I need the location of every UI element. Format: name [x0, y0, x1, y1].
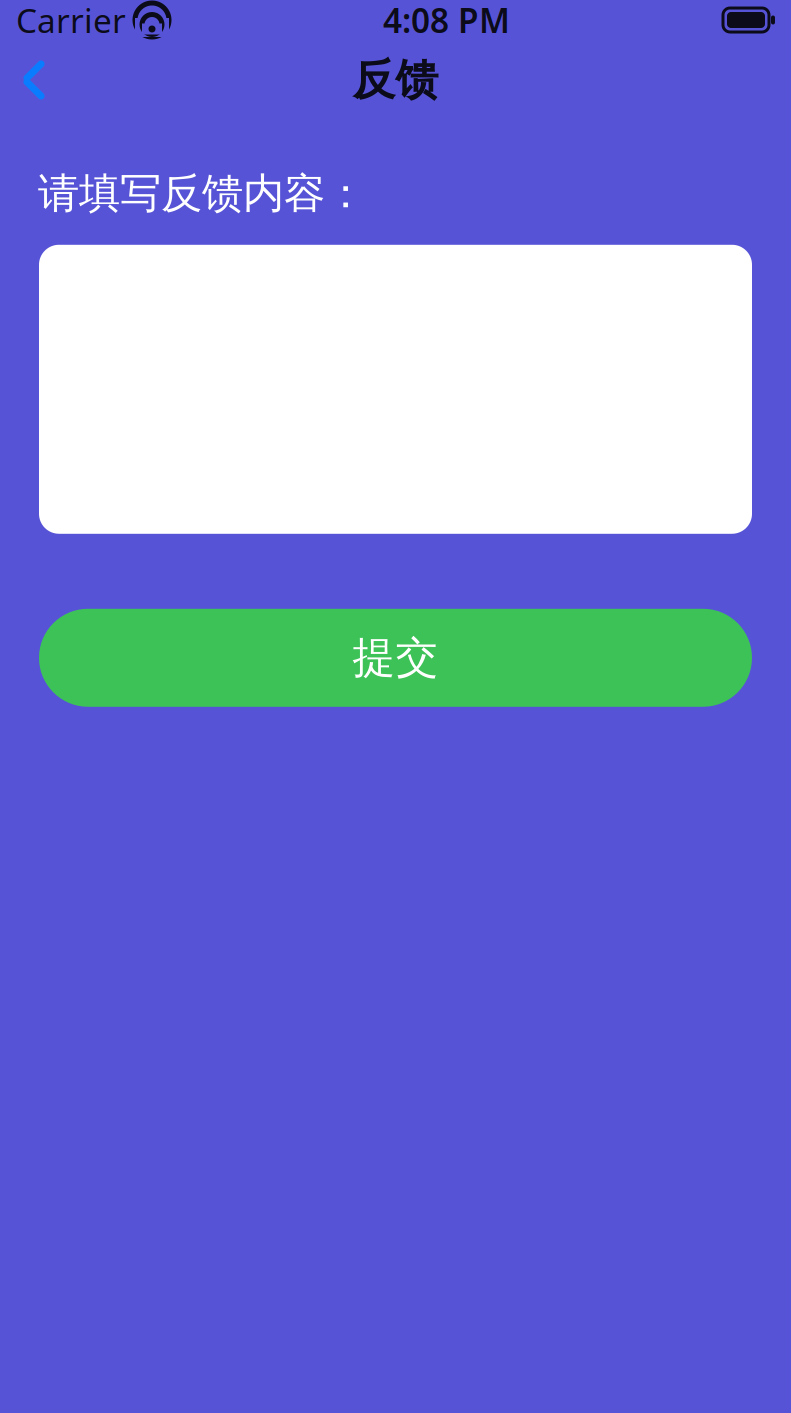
button[interactable]: Feedback text field: [39, 245, 752, 534]
staticText: 请填写反馈内容：: [38, 168, 366, 219]
staticText: 反馈: [352, 54, 438, 106]
button[interactable]: Back: [6, 50, 62, 110]
staticText: 提交: [352, 632, 438, 684]
staticText: 4:08 PM: [383, 0, 510, 42]
staticText: Carrier: [16, 0, 126, 42]
button[interactable]: 提交: [39, 609, 752, 707]
